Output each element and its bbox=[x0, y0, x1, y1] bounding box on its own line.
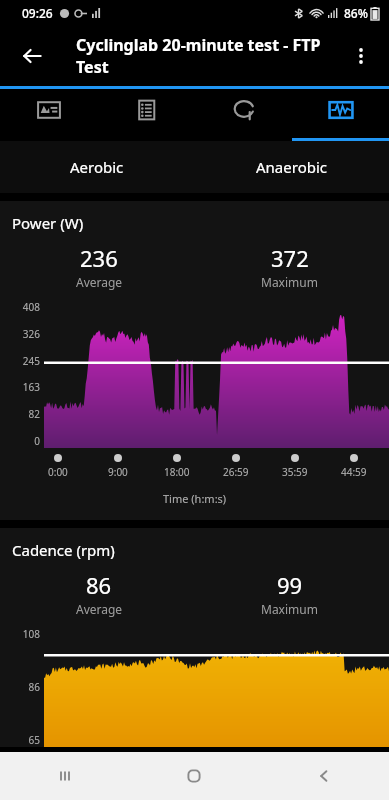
button[interactable]: Laps bbox=[195, 89, 292, 141]
staticText: Maximum bbox=[261, 601, 318, 617]
staticText: 86% bbox=[344, 5, 368, 21]
button[interactable]: Power (W) bbox=[0, 201, 389, 520]
staticText: 108 bbox=[22, 627, 40, 641]
staticText: Aerobic bbox=[70, 157, 124, 177]
button[interactable]: Back bbox=[8, 32, 56, 80]
staticText: 236 bbox=[80, 243, 118, 273]
staticText: Maximum bbox=[261, 274, 318, 290]
staticText: 408 bbox=[22, 300, 40, 314]
staticText: 86 bbox=[28, 680, 40, 694]
button[interactable]: Cadence (rpm) bbox=[0, 528, 389, 747]
staticText: Time (h:m:s) bbox=[163, 491, 227, 506]
button[interactable]: More options bbox=[337, 32, 385, 80]
staticText: Average bbox=[76, 601, 123, 617]
staticText: Cadence (rpm) bbox=[12, 540, 115, 560]
staticText: 372 bbox=[271, 243, 309, 273]
staticText: 35:59 bbox=[282, 465, 308, 479]
button[interactable]: Map bbox=[0, 89, 98, 141]
staticText: 86 bbox=[86, 570, 112, 600]
staticText: 82 bbox=[28, 407, 40, 421]
staticText: 0 bbox=[34, 434, 40, 448]
button[interactable]: Aerobic bbox=[0, 141, 194, 193]
staticText: 65 bbox=[28, 733, 40, 747]
button[interactable]: Graphs bbox=[292, 89, 389, 141]
staticText: 0:00 bbox=[48, 465, 68, 479]
button[interactable]: Recents bbox=[0, 752, 129, 800]
staticText: 09:26 bbox=[22, 5, 53, 21]
staticText: Cyclinglab 20-minute test - FTP Test bbox=[76, 34, 341, 78]
staticText: Average bbox=[76, 274, 123, 290]
staticText: Power (W) bbox=[12, 213, 84, 233]
button[interactable]: Details bbox=[98, 89, 195, 141]
staticText: 99 bbox=[277, 570, 303, 600]
button[interactable]: Back bbox=[259, 752, 389, 800]
button[interactable]: Home bbox=[129, 752, 259, 800]
staticText: 9:00 bbox=[108, 465, 128, 479]
staticText: 326 bbox=[22, 327, 40, 341]
staticText: 26:59 bbox=[223, 465, 249, 479]
button[interactable]: Anaerobic bbox=[194, 141, 389, 193]
staticText: 245 bbox=[22, 354, 40, 368]
staticText: 44:59 bbox=[341, 465, 367, 479]
staticText: 163 bbox=[22, 380, 40, 394]
staticText: Anaerobic bbox=[256, 157, 327, 177]
staticText: 18:00 bbox=[164, 465, 190, 479]
